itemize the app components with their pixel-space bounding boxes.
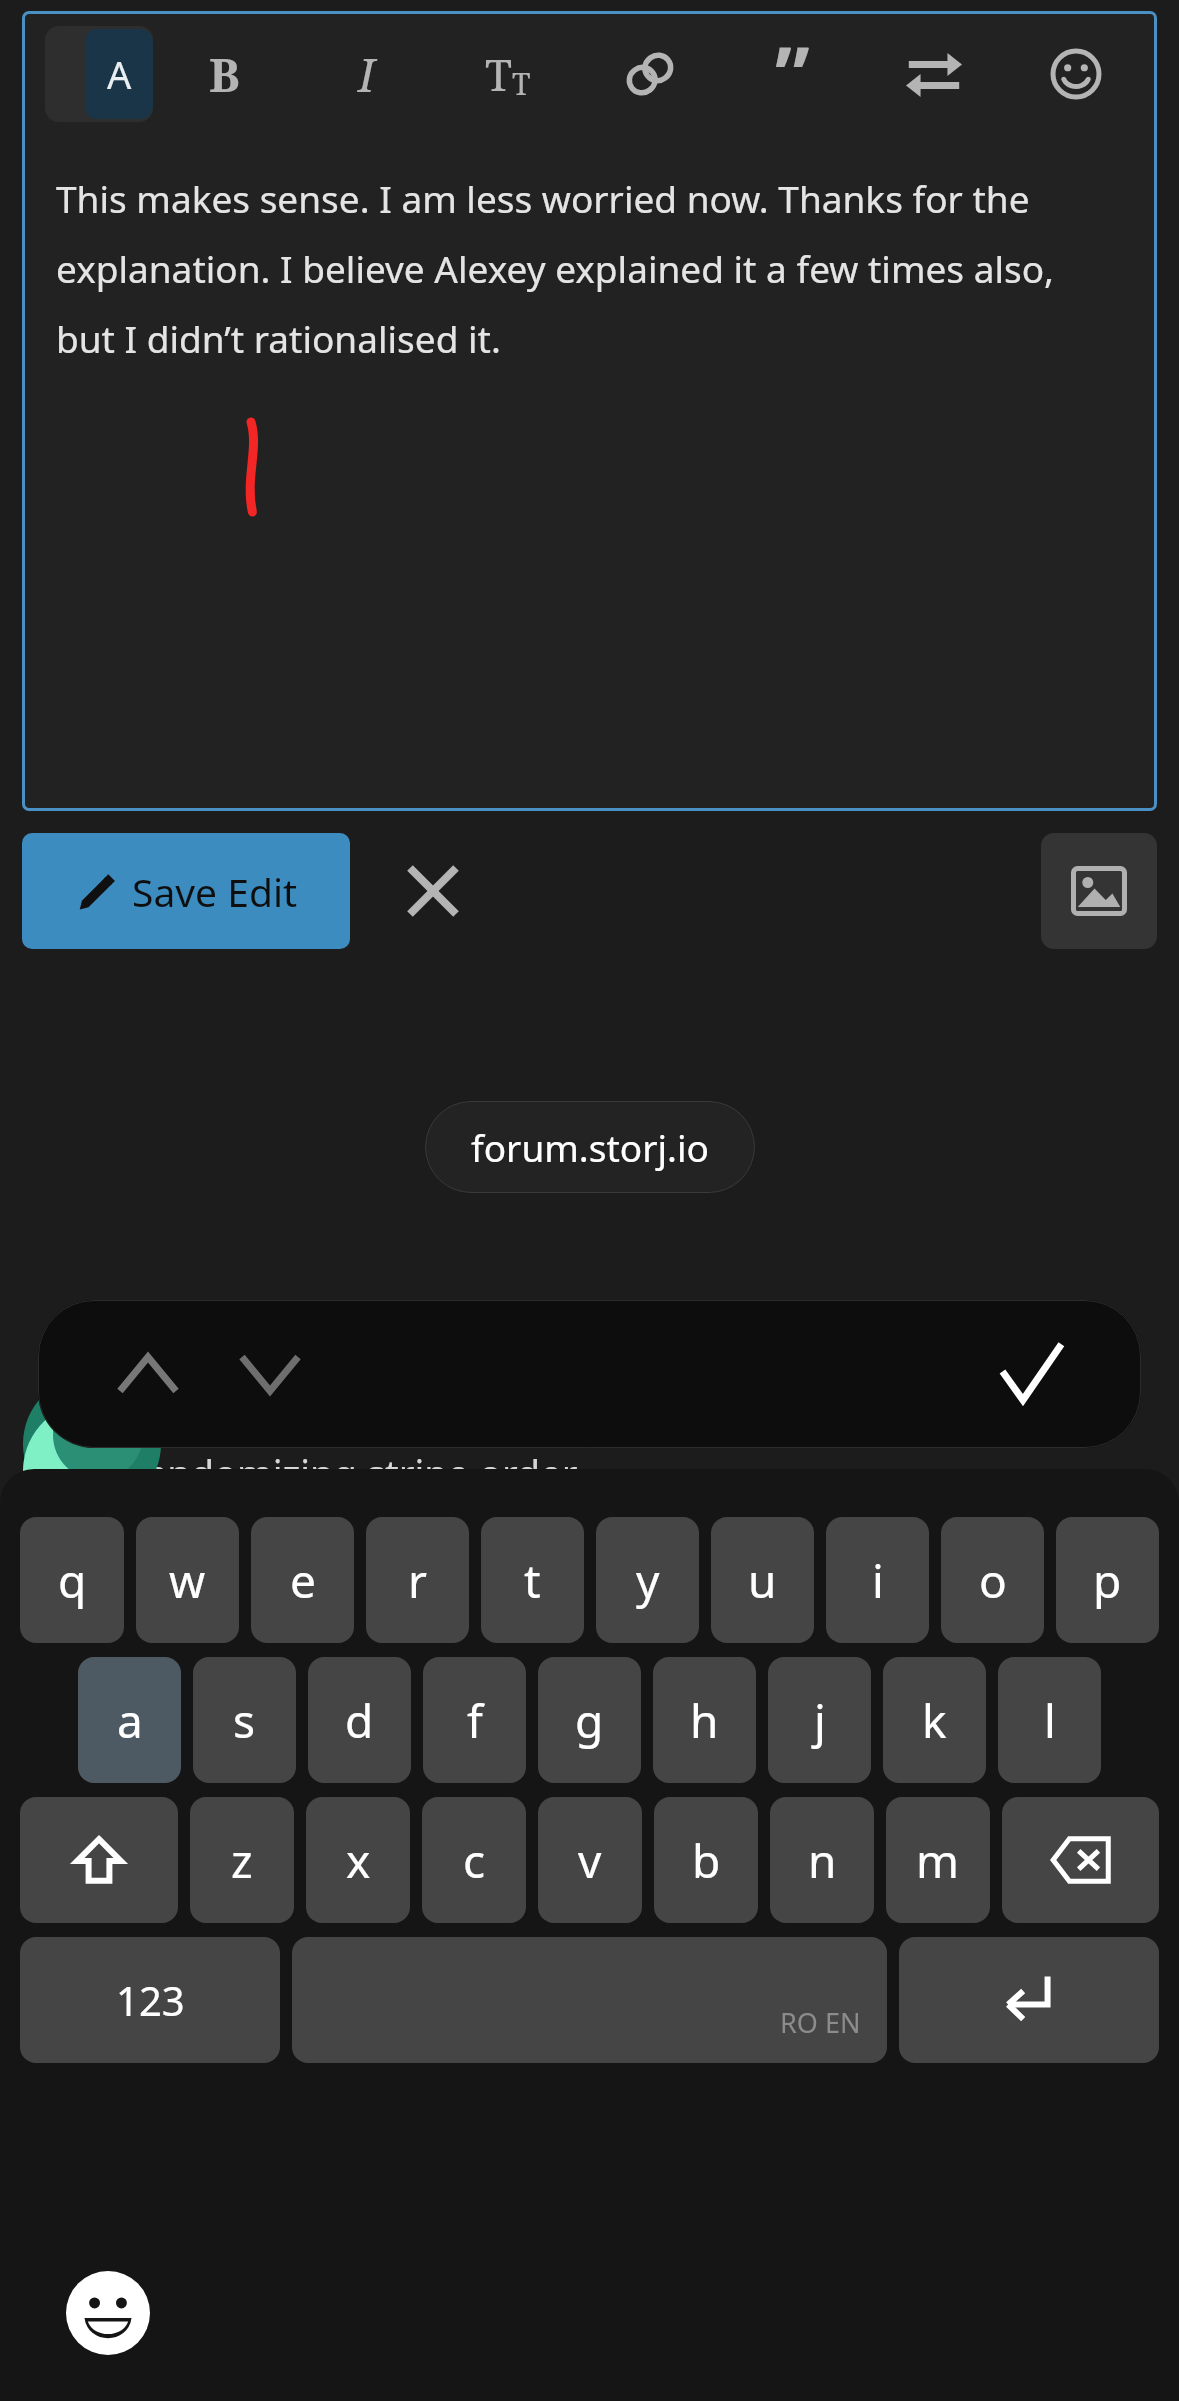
button[interactable]: h bbox=[653, 1657, 756, 1783]
button[interactable]: Heading bbox=[437, 11, 579, 137]
button[interactable]: Previous bbox=[100, 1326, 196, 1422]
staticText: x bbox=[346, 1829, 371, 1892]
staticText: g bbox=[575, 1689, 604, 1752]
staticText: This makes sense. I am less worried now.… bbox=[56, 173, 1121, 364]
staticText: v bbox=[578, 1829, 602, 1892]
button[interactable]: Insert image bbox=[1041, 833, 1157, 949]
staticText: j bbox=[814, 1689, 826, 1752]
button[interactable]: Confirm bbox=[981, 1324, 1081, 1424]
staticText: r bbox=[408, 1549, 427, 1612]
button[interactable]: Toggle preview bbox=[863, 11, 1005, 137]
button[interactable]: A bbox=[45, 26, 153, 122]
button[interactable]: s bbox=[193, 1657, 296, 1783]
staticText: l bbox=[1044, 1689, 1056, 1752]
button[interactable]: c bbox=[422, 1797, 526, 1923]
staticText: n bbox=[808, 1829, 837, 1892]
button[interactable]: d bbox=[308, 1657, 411, 1783]
button[interactable]: f bbox=[423, 1657, 526, 1783]
staticText: Save Edit bbox=[132, 865, 298, 918]
staticText: w bbox=[169, 1549, 206, 1612]
button[interactable]: u bbox=[711, 1517, 814, 1643]
staticText: T bbox=[512, 63, 531, 104]
staticText: c bbox=[463, 1829, 486, 1892]
button[interactable]: p bbox=[1056, 1517, 1159, 1643]
button[interactable]: Emoji keyboard bbox=[66, 2261, 170, 2365]
button[interactable]: l bbox=[998, 1657, 1101, 1783]
button[interactable]: w bbox=[136, 1517, 239, 1643]
staticText: RO EN bbox=[780, 2004, 861, 2041]
button[interactable]: e bbox=[251, 1517, 354, 1643]
staticText: t bbox=[524, 1549, 541, 1612]
button[interactable]: b bbox=[654, 1797, 758, 1923]
button[interactable]: i bbox=[826, 1517, 929, 1643]
button[interactable]: Enter bbox=[899, 1937, 1159, 2063]
button[interactable]: x bbox=[306, 1797, 410, 1923]
staticText: k bbox=[922, 1689, 947, 1752]
button[interactable]: Link bbox=[579, 11, 721, 137]
button[interactable]: forum.storj.io bbox=[425, 1101, 755, 1193]
button[interactable]: Emoji bbox=[1005, 11, 1147, 137]
staticText: u bbox=[748, 1549, 777, 1612]
button[interactable]: Shift bbox=[20, 1797, 178, 1923]
staticText: 123 bbox=[116, 1973, 185, 2027]
staticText: B bbox=[209, 43, 240, 106]
staticText: d bbox=[345, 1689, 374, 1752]
staticText: a bbox=[117, 1689, 143, 1752]
button[interactable]: Bold bbox=[153, 11, 295, 137]
staticText: e bbox=[290, 1549, 316, 1612]
button[interactable]: Cancel bbox=[378, 836, 488, 946]
button[interactable]: n bbox=[770, 1797, 874, 1923]
button[interactable]: m bbox=[886, 1797, 990, 1923]
button[interactable]: o bbox=[941, 1517, 1044, 1643]
button[interactable]: z bbox=[190, 1797, 294, 1923]
staticText: m bbox=[916, 1829, 960, 1892]
staticText: b bbox=[692, 1829, 721, 1892]
staticText: z bbox=[231, 1829, 253, 1892]
staticText: p bbox=[1093, 1549, 1122, 1612]
button[interactable]: k bbox=[883, 1657, 986, 1783]
staticText: i bbox=[872, 1549, 884, 1612]
button[interactable]: 123 bbox=[20, 1937, 280, 2063]
button[interactable]: q bbox=[20, 1517, 124, 1643]
button[interactable]: Quote bbox=[721, 11, 863, 137]
button[interactable]: a bbox=[78, 1657, 181, 1783]
staticText: forum.storj.io bbox=[471, 1122, 709, 1172]
button[interactable]: t bbox=[481, 1517, 584, 1643]
button[interactable]: j bbox=[768, 1657, 871, 1783]
button[interactable]: Save Edit bbox=[22, 833, 350, 949]
staticText: randomizing stripe order bbox=[131, 1447, 578, 1499]
button[interactable]: Space bbox=[292, 1937, 887, 2063]
button[interactable]: g bbox=[538, 1657, 641, 1783]
staticText: s bbox=[233, 1689, 256, 1752]
button[interactable]: y bbox=[596, 1517, 699, 1643]
staticText: A bbox=[107, 48, 132, 100]
staticText: y bbox=[636, 1549, 660, 1612]
staticText: f bbox=[467, 1689, 483, 1752]
button[interactable]: Next bbox=[222, 1326, 318, 1422]
button[interactable]: v bbox=[538, 1797, 642, 1923]
staticText: h bbox=[690, 1689, 719, 1752]
staticText: T bbox=[485, 44, 512, 104]
staticText: o bbox=[979, 1549, 1007, 1612]
button[interactable]: Italic bbox=[295, 11, 437, 137]
staticText: q bbox=[58, 1549, 87, 1612]
button[interactable]: r bbox=[366, 1517, 469, 1643]
staticText: I bbox=[358, 43, 375, 106]
staticText: ” bbox=[775, 21, 810, 127]
button[interactable]: Backspace bbox=[1002, 1797, 1159, 1923]
